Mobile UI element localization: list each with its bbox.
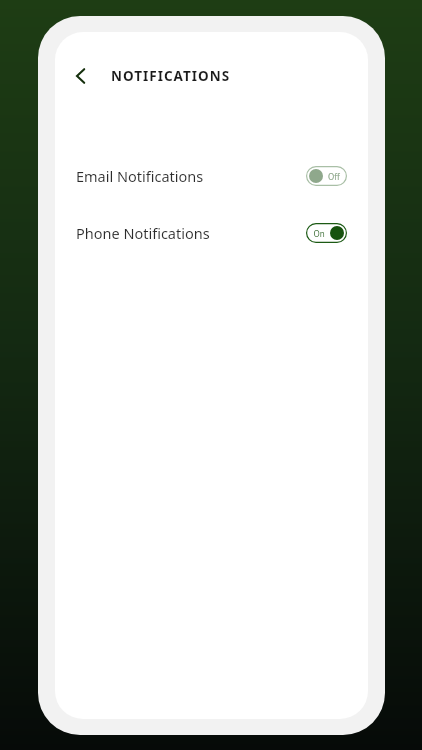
staticText: NOTIFICATIONS bbox=[111, 67, 231, 85]
button[interactable]: Email Notifications bbox=[55, 164, 368, 188]
staticText: On bbox=[313, 228, 325, 239]
staticText: Email Notifications bbox=[76, 166, 204, 186]
button[interactable]: Back bbox=[61, 56, 101, 96]
staticText: Phone Notifications bbox=[76, 223, 210, 243]
button[interactable]: Toggle off bbox=[306, 166, 347, 186]
button[interactable]: Toggle on bbox=[306, 223, 347, 243]
button[interactable]: Phone Notifications bbox=[55, 221, 368, 245]
staticText: Off bbox=[328, 171, 340, 182]
